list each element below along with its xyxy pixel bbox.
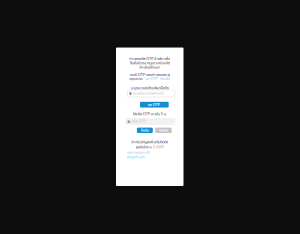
staticText: ยืนยัน xyxy=(141,127,149,133)
staticText: ยกเลิก xyxy=(159,127,168,133)
staticText: ข้อมูลส่วนตัว xyxy=(127,154,145,160)
staticText: ขอ OTP xyxy=(148,102,161,108)
button[interactable]: Mobile phone number xyxy=(127,90,175,97)
staticText: ระบุหมายเลขโทรศัพท์มือถือ xyxy=(131,85,169,91)
button[interactable]: ข้อกำหนดการใช้ xyxy=(127,150,150,155)
button[interactable]: ข้อมูลส่วนตัว xyxy=(127,154,145,160)
staticText: "ขอ OTP" อีกครั้ง xyxy=(143,76,170,82)
staticText: ผ่านในครั้งแรก xyxy=(139,64,160,70)
button[interactable]: "ขอ OTP" อีกครั้ง xyxy=(143,76,170,82)
staticText: หมายเลขโทรศัพท์มือถือ xyxy=(133,91,164,96)
button[interactable]: ยืนยัน xyxy=(137,128,153,133)
staticText: รหัส OTP xyxy=(131,119,145,124)
staticText: ยืนยันตัวตน กรุณารอรับรหัส xyxy=(130,60,170,66)
staticText: กรณี OTP ของท่านหมดอายุ xyxy=(130,72,170,78)
staticText: ข้อกำหนดการใช้ xyxy=(127,150,150,155)
button[interactable]: ยกเลิก xyxy=(155,128,172,133)
staticText: สำหรับข้อมูลเพิ่มเติมติดต่อ xyxy=(131,139,168,145)
staticText: 0-2000 xyxy=(153,144,164,150)
staticText: ท่านขอรหัส OTP 4 หลัก เพื่อ xyxy=(129,56,170,62)
staticText: กรุณากด xyxy=(129,76,143,82)
staticText: ศูนย์บริการ xyxy=(136,144,153,150)
staticText: ใส่รหัส OTP ภายใน 5 น. xyxy=(133,111,167,117)
button[interactable]: ขอ OTP xyxy=(140,102,169,107)
button[interactable]: OTP code xyxy=(125,118,175,125)
